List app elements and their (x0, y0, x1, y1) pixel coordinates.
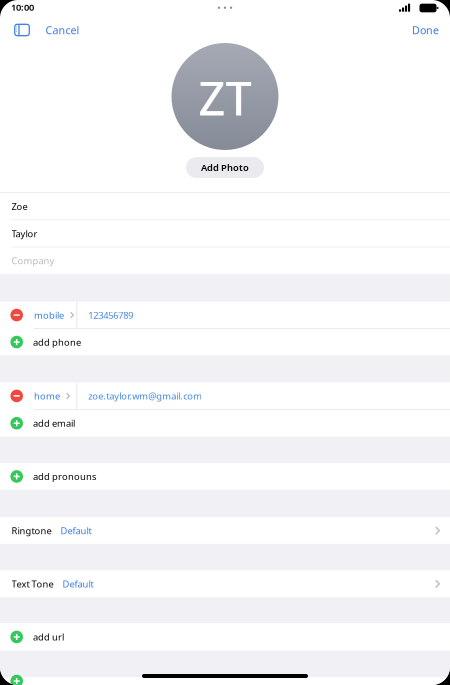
button[interactable]: Done (402, 18, 450, 42)
staticText: zoe.taylor.wm@gmail.com (88, 390, 202, 402)
button[interactable]: add phone (0, 329, 450, 355)
button[interactable]: add pronouns (0, 463, 450, 490)
staticText: Zoe (11, 200, 27, 213)
staticText: 123456789 (88, 309, 133, 321)
staticText: Taylor (11, 227, 37, 240)
staticText: Company (11, 255, 54, 267)
button[interactable]: Show Sidebar (0, 18, 37, 42)
staticText: add pronouns (33, 470, 96, 483)
button[interactable]: add url (0, 623, 450, 651)
button[interactable]: Add Photo (186, 157, 264, 178)
button[interactable]: Ringtone (0, 517, 450, 544)
staticText: add phone (33, 336, 81, 348)
staticText: Default (62, 578, 93, 590)
staticText: add url (33, 631, 64, 643)
staticText: Text Tone (11, 578, 53, 590)
staticText: Done (412, 23, 439, 37)
button[interactable]: Text Tone (0, 570, 450, 597)
button[interactable]: Cancel (37, 18, 89, 42)
staticText: 10:00 (11, 1, 34, 13)
staticText: add email (33, 417, 75, 429)
staticText: Ringtone (11, 524, 51, 537)
staticText: Cancel (45, 23, 79, 37)
staticText: ZT (198, 66, 251, 128)
button[interactable]: add email (0, 410, 450, 437)
staticText: mobile (34, 309, 64, 321)
staticText: home (34, 390, 60, 402)
staticText: Add Photo (201, 161, 249, 174)
staticText: Default (60, 524, 91, 537)
